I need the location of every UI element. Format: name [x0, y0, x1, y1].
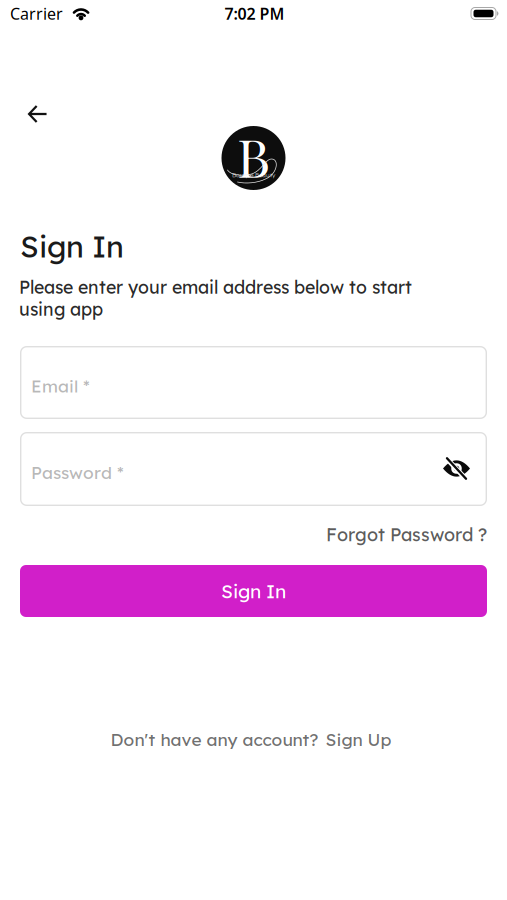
- staticText: Sign In: [20, 227, 124, 265]
- button[interactable]: Sign In: [20, 565, 487, 617]
- button[interactable]: Password *: [20, 432, 487, 506]
- staticText: Email *: [31, 375, 90, 397]
- button[interactable]: Forgot Password ?: [326, 523, 487, 546]
- button[interactable]: Back: [19, 97, 55, 131]
- staticText: Sign Up: [325, 729, 391, 750]
- staticText: B: [237, 120, 270, 191]
- button[interactable]: Email *: [20, 346, 487, 419]
- staticText: Bou-jee Beauty: [232, 171, 275, 179]
- button[interactable]: Show password: [435, 450, 478, 486]
- button[interactable]: Sign Up: [325, 729, 391, 750]
- staticText: 7:02 PM: [224, 3, 284, 24]
- staticText: Forgot Password ?: [326, 523, 487, 546]
- staticText: Carrier: [10, 3, 63, 24]
- staticText: Password *: [31, 462, 124, 483]
- staticText: Don't have any account?: [110, 729, 318, 750]
- staticText: Sign In: [221, 579, 286, 603]
- staticText: Please enter your email address below to…: [19, 276, 412, 320]
